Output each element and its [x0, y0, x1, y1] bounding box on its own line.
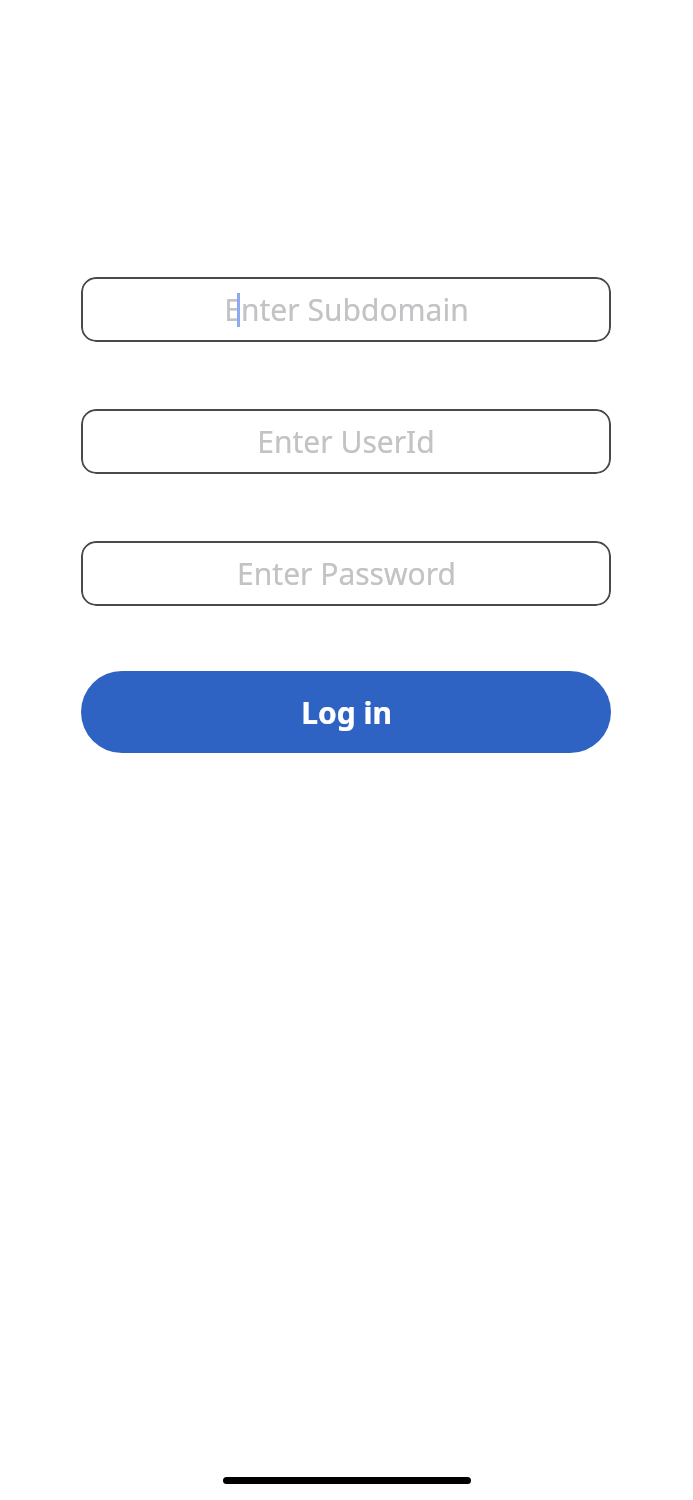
button[interactable]: Enter Subdomain — [81, 277, 611, 342]
staticText: Log in — [301, 692, 392, 733]
staticText: Enter Password — [237, 553, 456, 594]
button[interactable]: Enter Password — [81, 541, 611, 606]
staticText: Enter Subdomain — [224, 289, 469, 330]
button[interactable]: Enter UserId — [81, 409, 611, 474]
staticText: Enter UserId — [257, 421, 435, 462]
button[interactable]: Log in — [81, 671, 611, 753]
